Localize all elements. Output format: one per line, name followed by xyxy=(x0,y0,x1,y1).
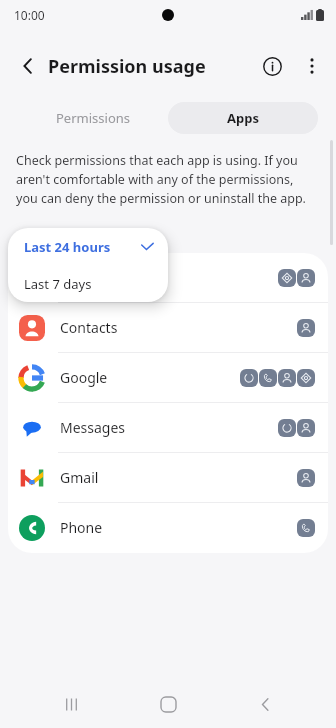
staticText: Last 7 days xyxy=(24,275,92,293)
staticText: Last 24 hours xyxy=(24,238,111,256)
staticText: Gmail xyxy=(60,468,99,487)
staticText: Permission usage xyxy=(48,54,206,79)
staticText: Permissions xyxy=(56,109,131,127)
button[interactable]: Google xyxy=(8,353,328,402)
button[interactable]: Camera xyxy=(8,253,328,302)
button[interactable]: Gmail xyxy=(8,453,328,502)
button[interactable]: Last 24 hours xyxy=(8,228,168,265)
button[interactable]: Apps xyxy=(168,102,318,134)
button[interactable]: Phone xyxy=(8,503,328,552)
staticText: 10:00 xyxy=(14,7,45,23)
staticText: Phone xyxy=(60,518,103,537)
staticText: Messages xyxy=(60,418,126,437)
button[interactable]: Recent apps xyxy=(45,680,97,728)
staticText: Apps xyxy=(227,109,259,127)
staticText: Check permissions that each app is using… xyxy=(16,152,314,207)
button[interactable]: Back xyxy=(8,46,48,86)
staticText: Contacts xyxy=(60,318,118,337)
button[interactable]: Permissions xyxy=(18,102,168,134)
button[interactable]: Contacts xyxy=(8,303,328,352)
button[interactable]: Last 7 days xyxy=(8,265,168,302)
button[interactable]: Home xyxy=(142,680,194,728)
button[interactable]: Back xyxy=(239,680,291,728)
button[interactable]: More options xyxy=(292,46,332,86)
button[interactable]: Information xyxy=(252,46,292,86)
button[interactable]: Messages xyxy=(8,403,328,452)
staticText: Camera xyxy=(60,268,112,287)
staticText: Google xyxy=(60,368,108,387)
